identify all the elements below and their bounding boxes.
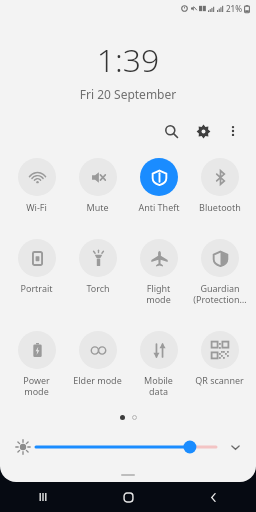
button[interactable]: Wi-Fi	[6, 158, 67, 213]
staticText: Wi-Fi	[26, 201, 47, 213]
staticText: QR scanner	[195, 374, 244, 386]
button[interactable]: Elder mode	[67, 331, 128, 386]
staticText: 1:39	[0, 38, 256, 82]
button[interactable]: Bluetooth	[189, 158, 250, 213]
button[interactable]: More options	[220, 118, 246, 144]
staticText: Torch	[86, 282, 110, 294]
button[interactable]: Settings	[190, 118, 216, 144]
button[interactable]: Brightness	[10, 434, 36, 460]
staticText: Guardian (Protection…	[193, 282, 247, 305]
button[interactable]: Mobile data	[128, 331, 189, 397]
button[interactable]: Recent apps	[0, 482, 86, 512]
staticText: Portrait	[20, 282, 53, 294]
staticText: Flight mode	[146, 282, 171, 305]
staticText: Mute	[86, 201, 109, 213]
button[interactable]: Portrait	[6, 239, 67, 294]
button[interactable]: Home	[86, 482, 171, 512]
staticText: Bluetooth	[199, 201, 241, 213]
button[interactable]: Power mode	[6, 331, 67, 397]
button[interactable]: Mute	[67, 158, 128, 213]
button[interactable]: Guardian (Protection…	[189, 239, 250, 305]
staticText: Power mode	[23, 374, 50, 397]
button[interactable]: QR scanner	[189, 331, 250, 386]
staticText: Mobile data	[144, 374, 173, 397]
button[interactable]: Expand brightness settings	[224, 436, 246, 458]
button[interactable]	[36, 437, 216, 457]
button[interactable]: Anti Theft	[128, 158, 189, 213]
staticText: Anti Theft	[138, 201, 180, 213]
staticText: Fri 20 September	[0, 86, 256, 102]
staticText: 21%	[226, 3, 242, 14]
button[interactable]: Search	[158, 118, 184, 144]
button[interactable]: Torch	[67, 239, 128, 294]
button[interactable]: Flight mode	[128, 239, 189, 305]
staticText: Elder mode	[73, 374, 122, 386]
button[interactable]: Back	[171, 482, 256, 512]
